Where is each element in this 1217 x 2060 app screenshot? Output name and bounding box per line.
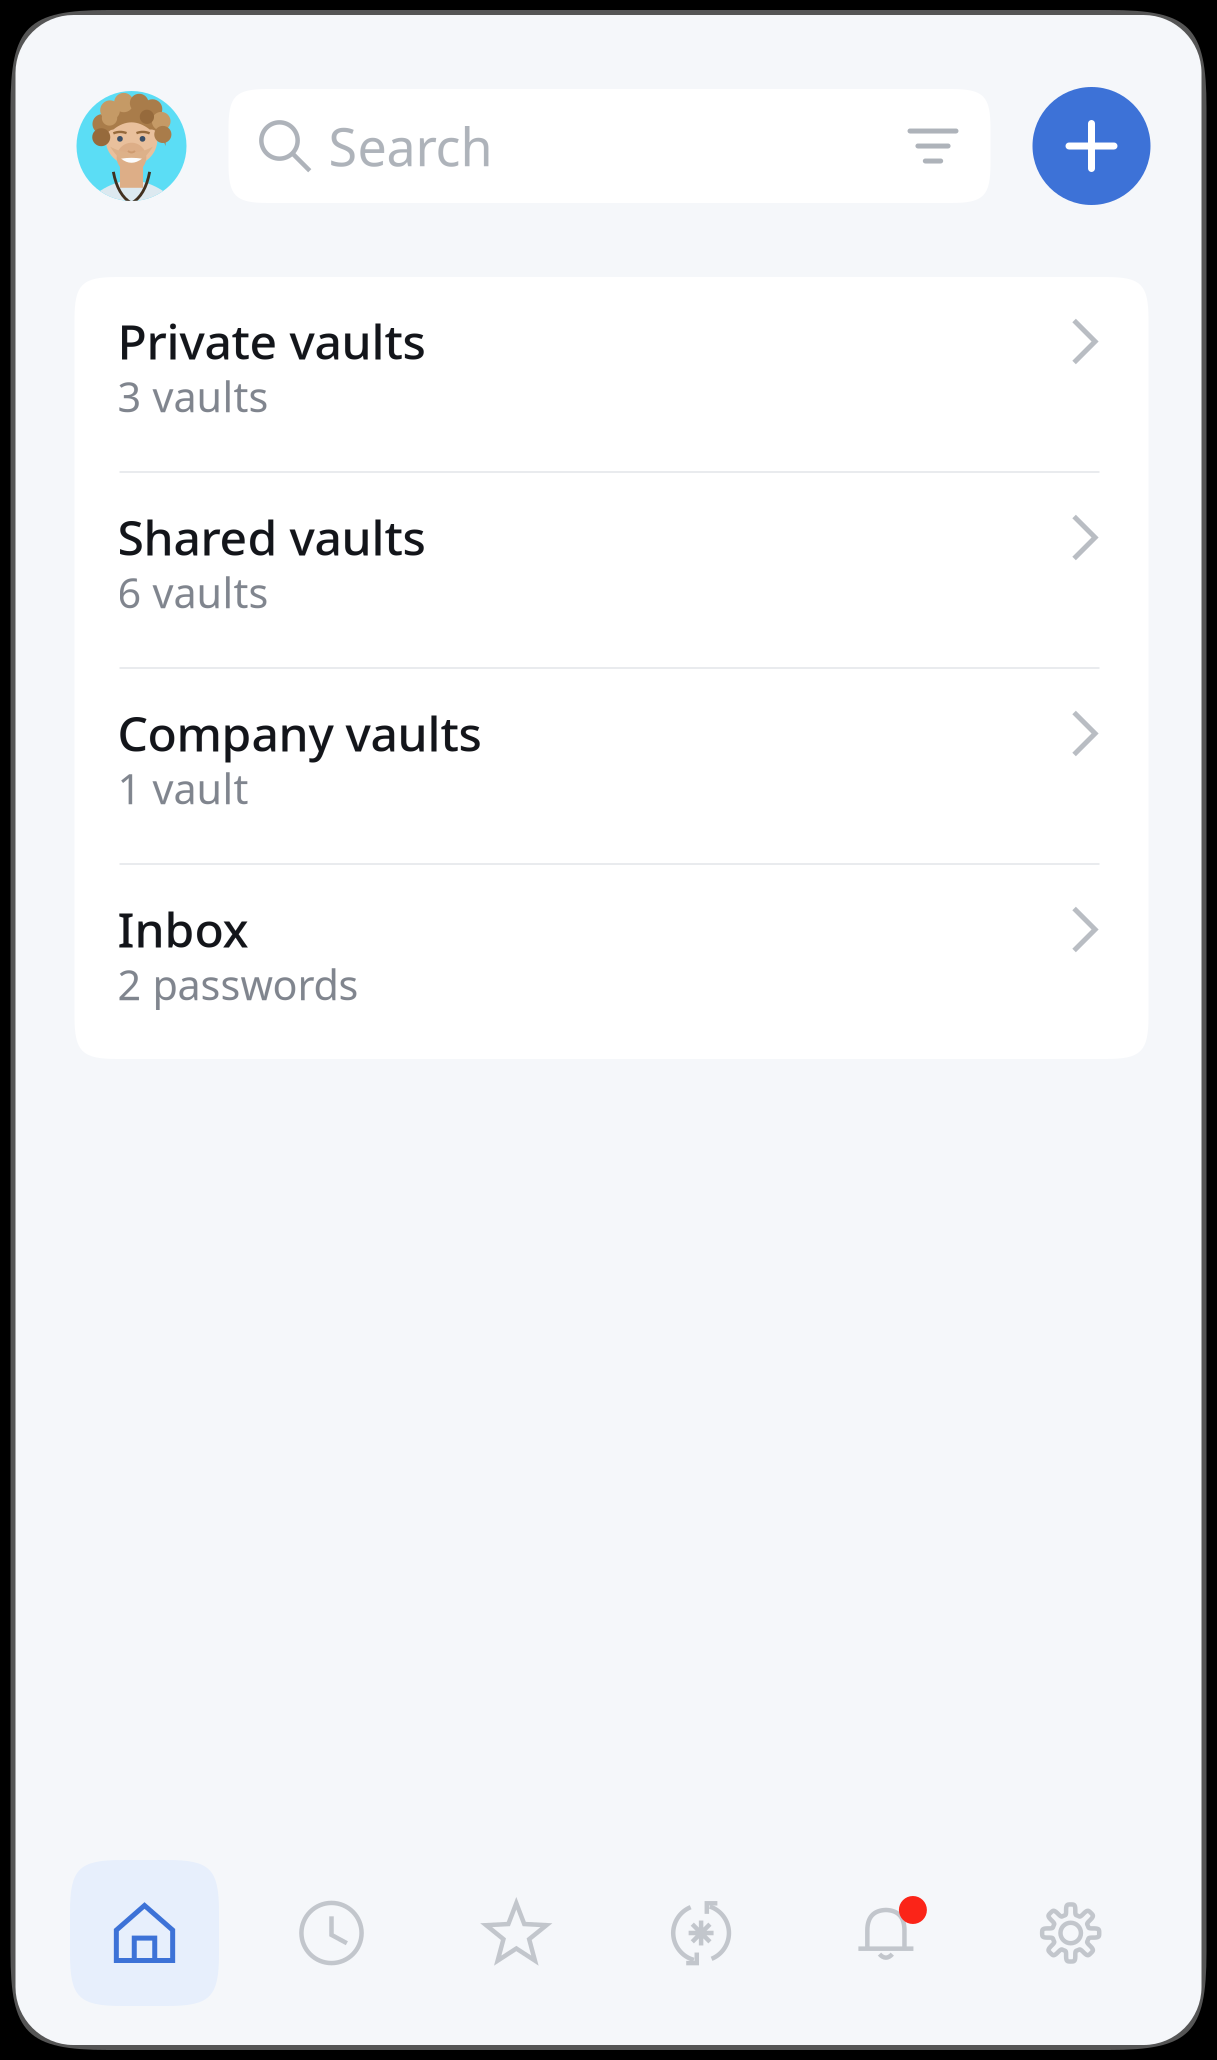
button[interactable]: Inbox (74, 865, 1148, 1059)
button[interactable]: Private vaults (74, 277, 1148, 471)
button[interactable]: Search (228, 89, 990, 203)
staticText: Company vaults (117, 701, 481, 765)
button[interactable]: Add item (1032, 87, 1150, 205)
button[interactable]: Home (50, 1860, 239, 2006)
button[interactable]: Account (76, 91, 186, 201)
button[interactable]: Shared vaults (74, 473, 1148, 667)
staticText: 1 vault (117, 761, 248, 816)
staticText: Search (328, 111, 492, 181)
button[interactable]: Settings (978, 1860, 1163, 2006)
button[interactable]: Favourites (424, 1860, 609, 2006)
button[interactable]: Recent (239, 1860, 424, 2006)
staticText: Inbox (117, 897, 248, 961)
staticText: Private vaults (117, 309, 425, 373)
button[interactable]: Password generator (609, 1860, 793, 2006)
staticText: 3 vaults (117, 369, 268, 424)
staticText: 2 passwords (117, 957, 358, 1012)
staticText: Shared vaults (117, 505, 425, 569)
staticText: 6 vaults (117, 565, 268, 620)
button[interactable]: Notifications (793, 1860, 978, 2006)
button[interactable]: Company vaults (74, 669, 1148, 863)
